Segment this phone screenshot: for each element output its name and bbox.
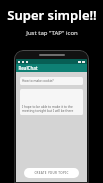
button[interactable]: How to make cookie? bbox=[20, 77, 83, 85]
staticText: RealChat bbox=[18, 65, 38, 71]
staticText: Just tap "TAP" icon bbox=[26, 29, 78, 37]
button[interactable]: I hope to be able to make it to the meet… bbox=[20, 89, 83, 115]
button[interactable]: CREATE YOUR TOPIC bbox=[24, 168, 79, 178]
staticText: How to make cookie? bbox=[22, 79, 54, 83]
staticText: CREATE YOUR TOPIC bbox=[34, 171, 69, 175]
button[interactable]: RealChat bbox=[16, 64, 87, 72]
staticText: Super simple!! bbox=[7, 6, 97, 24]
staticText: I hope to be able to make it to the meet… bbox=[22, 105, 74, 113]
